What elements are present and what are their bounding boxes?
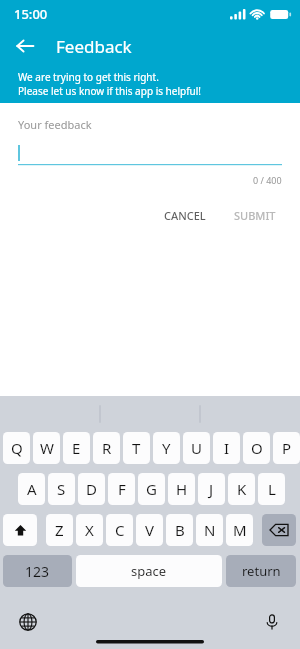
staticText: A <box>27 479 37 499</box>
staticText: M <box>233 520 247 540</box>
staticText: D <box>86 479 97 499</box>
staticText: R <box>102 438 112 458</box>
staticText: H <box>176 479 188 499</box>
button[interactable]: A <box>18 473 45 505</box>
staticText: L <box>268 479 276 499</box>
staticText: Z <box>55 520 64 540</box>
button[interactable]: return <box>226 555 296 587</box>
button[interactable]: T <box>123 432 150 464</box>
staticText: E <box>72 438 81 458</box>
button[interactable]: space <box>76 555 222 587</box>
button[interactable]: R <box>93 432 120 464</box>
button[interactable]: M <box>226 514 253 546</box>
staticText: We are trying to get this right. <box>18 70 159 84</box>
staticText: CANCEL <box>164 208 206 223</box>
button[interactable]: 123 <box>3 555 72 587</box>
button[interactable]: H <box>168 473 195 505</box>
staticText: space <box>131 562 167 580</box>
button[interactable]: G <box>138 473 165 505</box>
staticText: 15:00 <box>14 5 48 23</box>
button[interactable]: E <box>63 432 90 464</box>
button[interactable]: U <box>183 432 210 464</box>
button[interactable]: W <box>33 432 60 464</box>
button[interactable]: P <box>273 432 300 464</box>
button[interactable] <box>18 142 282 164</box>
staticText: SUBMIT <box>234 208 276 223</box>
staticText: V <box>145 520 155 540</box>
button[interactable]: X <box>76 514 103 546</box>
button[interactable]: Y <box>153 432 180 464</box>
button[interactable]: L <box>258 473 285 505</box>
button[interactable]: Shift <box>3 514 37 546</box>
button[interactable]: Z <box>46 514 73 546</box>
button[interactable]: O <box>243 432 270 464</box>
staticText: 0 / 400 <box>253 174 282 186</box>
staticText: G <box>146 479 157 499</box>
staticText: U <box>191 438 202 458</box>
button[interactable]: Change keyboard <box>14 608 42 636</box>
staticText: Q <box>11 438 23 458</box>
staticText: Please let us know if this app is helpfu… <box>18 84 202 98</box>
staticText: K <box>237 479 247 499</box>
staticText: S <box>57 479 66 499</box>
staticText: return <box>242 562 281 580</box>
staticText: I <box>224 438 230 458</box>
staticText: C <box>115 520 125 540</box>
staticText: P <box>282 438 292 458</box>
button[interactable]: Q <box>3 432 30 464</box>
button[interactable]: I <box>213 432 240 464</box>
staticText: J <box>209 479 214 499</box>
button[interactable]: V <box>136 514 163 546</box>
button[interactable]: B <box>166 514 193 546</box>
button[interactable]: Back <box>8 29 42 63</box>
staticText: X <box>85 520 94 540</box>
staticText: N <box>204 520 216 540</box>
staticText: F <box>118 479 126 499</box>
staticText: 123 <box>25 562 50 581</box>
button[interactable]: C <box>106 514 133 546</box>
button[interactable]: Voice input <box>258 608 286 636</box>
button[interactable]: D <box>78 473 105 505</box>
button[interactable]: K <box>228 473 255 505</box>
staticText: Feedback <box>56 35 132 58</box>
button[interactable]: CANCEL <box>154 202 216 229</box>
button[interactable]: SUBMIT <box>224 202 286 229</box>
button[interactable]: Backspace <box>262 514 296 546</box>
staticText: O <box>251 438 263 458</box>
button[interactable]: S <box>48 473 75 505</box>
staticText: Your feedback <box>18 117 92 132</box>
button[interactable]: J <box>198 473 225 505</box>
staticText: Y <box>162 438 171 458</box>
staticText: W <box>40 438 54 458</box>
button[interactable]: N <box>196 514 223 546</box>
staticText: T <box>132 438 141 458</box>
button[interactable]: F <box>108 473 135 505</box>
staticText: B <box>175 520 185 540</box>
